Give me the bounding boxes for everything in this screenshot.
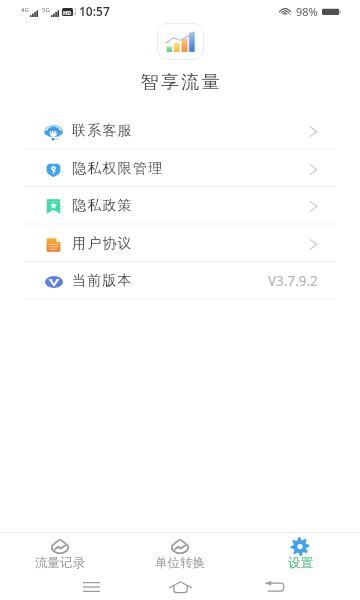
button[interactable]: Back (244, 573, 304, 600)
staticText: 智享流量 (139, 71, 221, 94)
button[interactable]: 隐私权限管理 (0, 150, 360, 188)
staticText: HD (63, 9, 72, 16)
staticText: 当前版本 (72, 272, 133, 290)
staticText: 隐私政策 (72, 197, 133, 215)
staticText: 流量记录 (35, 555, 85, 571)
button[interactable]: 当前版本 (0, 262, 360, 300)
staticText: 5G (42, 6, 50, 14)
staticText: 联系客服 (72, 122, 133, 140)
button[interactable]: 用户协议 (0, 225, 360, 263)
staticText: 98% (296, 4, 318, 19)
button[interactable]: 设置 (240, 533, 360, 573)
staticText: V3.7.9.2 (268, 272, 318, 290)
button[interactable]: Home (150, 573, 210, 600)
staticText: 单位转换 (155, 555, 205, 571)
staticText: 10:57 (79, 3, 110, 19)
button[interactable]: 隐私政策 (0, 187, 360, 225)
button[interactable]: Recent apps (61, 573, 121, 600)
staticText: 隐私权限管理 (72, 160, 164, 178)
button[interactable]: 单位转换 (120, 533, 240, 573)
button[interactable]: 流量记录 (0, 533, 120, 573)
button[interactable]: 联系客服 (0, 112, 360, 150)
staticText: 1 2 (74, 7, 77, 16)
staticText: 用户协议 (72, 235, 133, 253)
staticText: 设置 (288, 555, 313, 571)
staticText: 4G (21, 6, 29, 14)
